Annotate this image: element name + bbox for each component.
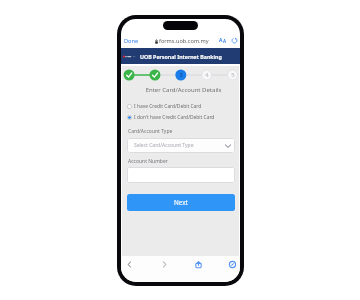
button[interactable]: Reload page <box>231 37 238 44</box>
button[interactable]: Done <box>121 35 141 47</box>
staticText: A <box>219 37 223 44</box>
button[interactable]: I have Credit Card/Debit Card <box>122 101 239 111</box>
staticText: Next <box>174 198 188 207</box>
button[interactable]: Next <box>127 194 235 211</box>
staticText: Account Number <box>128 158 168 165</box>
staticText: Done <box>124 37 139 45</box>
staticText: forms.uob.com.my <box>159 37 209 45</box>
staticText: Card/Account Type <box>128 128 173 135</box>
button[interactable]: Select Card/Account Type <box>127 138 235 153</box>
button[interactable]: I don't have Credit Card/Debit Card <box>122 112 239 122</box>
staticText: Select Card/Account Type <box>134 142 194 149</box>
staticText: Enter Card/Account Details <box>125 86 240 94</box>
staticText: UOB Personal Internet Banking <box>140 53 222 60</box>
staticText: A <box>223 38 227 44</box>
staticText: I have Credit Card/Debit Card <box>134 103 202 110</box>
button[interactable]: Safari tabs <box>223 256 240 273</box>
button[interactable]: Back <box>121 256 138 273</box>
staticText: 5 <box>231 71 235 79</box>
staticText: 3 <box>179 71 183 79</box>
button[interactable]: Text size options <box>218 36 228 45</box>
staticText: 4 <box>205 71 209 79</box>
button[interactable]: Share <box>189 256 207 273</box>
staticText: I don't have Credit Card/Debit Card <box>134 114 215 121</box>
button[interactable]: Forward <box>155 256 173 273</box>
button[interactable] <box>127 167 235 183</box>
